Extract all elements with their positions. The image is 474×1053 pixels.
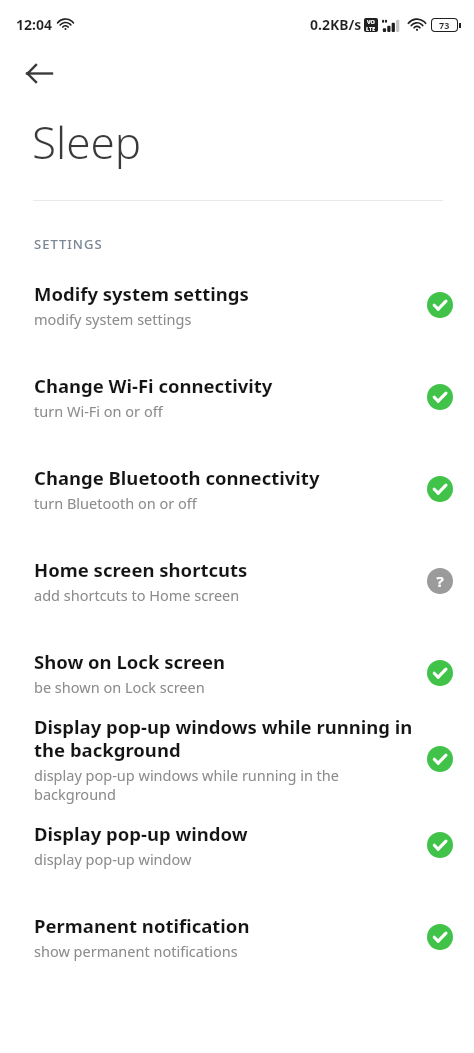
staticText: Change Wi-Fi connectivity xyxy=(34,373,273,398)
button[interactable]: Home screen shortcuts xyxy=(0,557,474,605)
staticText: display pop-up window xyxy=(34,849,192,869)
staticText: SETTINGS xyxy=(34,235,103,253)
staticText: Home screen shortcuts xyxy=(34,557,248,582)
staticText: Sleep xyxy=(32,112,142,172)
button[interactable]: Display pop-up windows while running in … xyxy=(0,714,474,804)
other: Permission granted xyxy=(427,384,453,410)
other: Permission granted xyxy=(427,924,453,950)
button[interactable]: Show on Lock screen xyxy=(0,649,474,697)
staticText: 73 xyxy=(439,19,450,31)
staticText: Show on Lock screen xyxy=(34,649,226,674)
button[interactable]: Modify system settings xyxy=(0,281,474,329)
button[interactable]: Display pop-up window xyxy=(0,821,474,869)
button[interactable]: Back xyxy=(0,48,78,98)
staticText: 0.2KB/s xyxy=(310,15,362,34)
other: Unknown permission xyxy=(427,568,453,594)
other: Permission granted xyxy=(427,292,453,318)
button[interactable]: Change Wi-Fi connectivity xyxy=(0,373,474,421)
staticText: Display pop-up window xyxy=(34,821,248,846)
button[interactable]: Permanent notification xyxy=(0,913,474,961)
staticText: Display pop-up windows while running in … xyxy=(34,714,415,762)
staticText: turn Bluetooth on or off xyxy=(34,493,197,513)
staticText: Permanent notification xyxy=(34,913,250,938)
staticText: turn Wi-Fi on or off xyxy=(34,401,163,421)
other: Permission granted xyxy=(427,660,453,686)
other: Permission granted xyxy=(427,746,453,772)
staticText: LTE xyxy=(366,25,376,32)
staticText: display pop-up windows while running in … xyxy=(34,765,415,804)
staticText: add shortcuts to Home screen xyxy=(34,585,240,605)
staticText: VO xyxy=(367,18,375,25)
staticText: modify system settings xyxy=(34,309,192,329)
staticText: show permanent notifications xyxy=(34,941,238,961)
staticText: Change Bluetooth connectivity xyxy=(34,465,320,490)
staticText: ? xyxy=(436,571,444,591)
staticText: be shown on Lock screen xyxy=(34,677,205,697)
staticText: Modify system settings xyxy=(34,281,249,306)
button[interactable]: Change Bluetooth connectivity xyxy=(0,465,474,513)
other: Permission granted xyxy=(427,832,453,858)
other: Permission granted xyxy=(427,476,453,502)
staticText: 12:04 xyxy=(16,15,52,34)
